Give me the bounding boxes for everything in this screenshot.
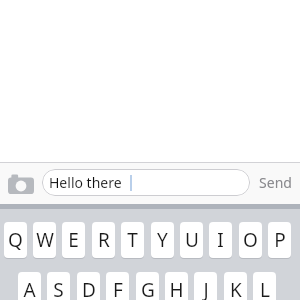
button[interactable]: I [209, 222, 232, 258]
button[interactable]: Camera [7, 173, 35, 195]
button[interactable]: L [253, 272, 276, 300]
button[interactable]: R [92, 222, 115, 258]
button[interactable]: S [47, 272, 70, 300]
staticText: I [217, 227, 224, 253]
button[interactable]: A [18, 272, 41, 300]
button[interactable]: T [121, 222, 144, 258]
button[interactable]: D [77, 272, 100, 300]
staticText: P [274, 227, 286, 253]
staticText: Y [157, 227, 168, 253]
button[interactable]: U [180, 222, 203, 258]
staticText: D [82, 277, 96, 300]
staticText: K [230, 277, 242, 300]
staticText: U [185, 227, 199, 253]
button[interactable]: Send [253, 169, 297, 196]
staticText: Hello there [49, 173, 122, 192]
button[interactable]: G [136, 272, 159, 300]
button[interactable]: Y [151, 222, 174, 258]
button[interactable]: H [165, 272, 188, 300]
staticText: L [260, 277, 270, 300]
button[interactable]: F [106, 272, 129, 300]
staticText: S [53, 277, 64, 300]
staticText: J [203, 277, 209, 300]
staticText: W [36, 227, 54, 253]
staticText: R [98, 227, 110, 253]
button[interactable]: W [33, 222, 56, 258]
button[interactable]: E [62, 222, 85, 258]
button[interactable]: Hello there [42, 169, 250, 196]
staticText: Q [8, 227, 23, 253]
staticText: F [113, 277, 123, 300]
button[interactable]: O [239, 222, 262, 258]
button[interactable]: K [224, 272, 247, 300]
staticText: T [127, 227, 138, 253]
button[interactable]: Q [4, 222, 27, 258]
staticText: O [243, 227, 258, 253]
staticText: Send [259, 173, 292, 192]
button[interactable]: J [194, 272, 217, 300]
staticText: G [141, 277, 155, 300]
staticText: H [169, 277, 184, 300]
staticText: A [23, 277, 36, 300]
button[interactable]: P [268, 222, 291, 258]
staticText: E [68, 227, 79, 253]
